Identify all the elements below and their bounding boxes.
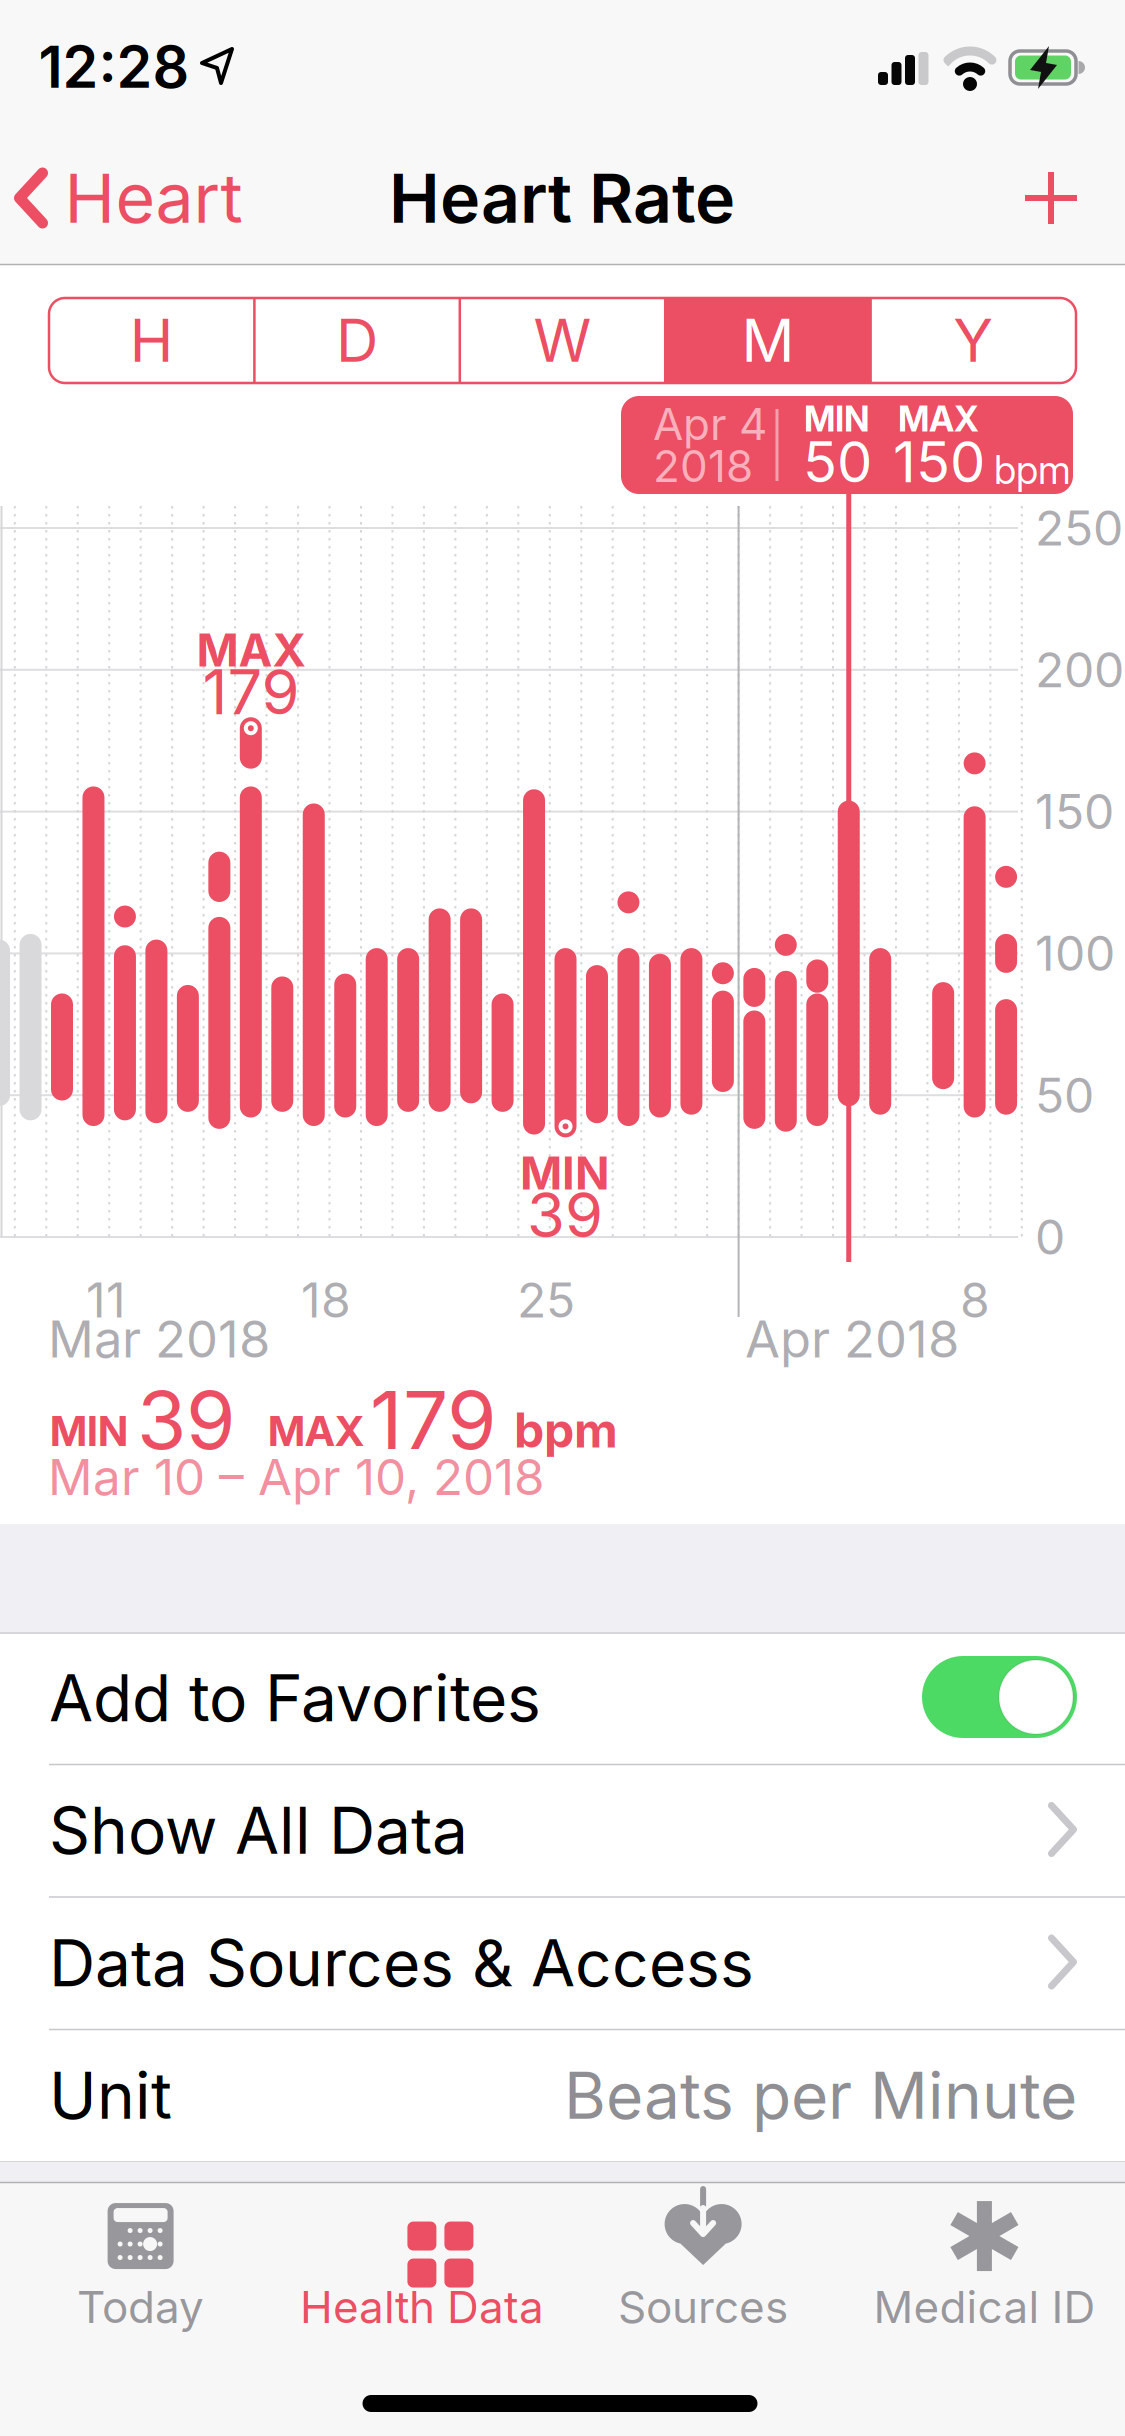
staticText: MIN [520,1146,610,1200]
button[interactable]: Today [1,2203,281,2333]
staticText: MAX [898,399,979,439]
staticText: 200 [1035,641,1124,698]
button[interactable]: H [49,298,254,383]
staticText: Mar 2018 [48,1309,270,1369]
staticText: 39 [137,1373,236,1467]
staticText: 25 [517,1272,575,1328]
staticText: 39 [527,1179,603,1251]
staticText: 50 [803,429,872,495]
staticText: H [130,306,174,375]
staticText: bpm [514,1402,618,1458]
staticText: 179 [202,656,299,728]
staticText: Sources [618,2281,788,2333]
staticText: Heart Rate [389,158,735,238]
staticText: 250 [1035,500,1123,556]
staticText: Beats per Minute [564,2058,1077,2133]
staticText: 150 [1035,783,1114,840]
staticText: MAX [268,1407,364,1455]
button[interactable]: W [460,298,665,383]
staticText: 100 [1035,925,1115,982]
button[interactable]: M [665,298,871,383]
staticText: 18 [301,1272,351,1328]
staticText: 0 [1035,1209,1065,1265]
staticText: Unit [49,2058,172,2133]
staticText: 12:28 [38,33,189,101]
staticText: Data Sources & Access [49,1925,754,2001]
staticText: Y [953,306,993,375]
staticText: W [533,306,591,375]
staticText: 50 [1035,1067,1094,1123]
staticText: 179 [370,1373,497,1467]
staticText: bpm [994,447,1071,493]
staticText: MIN [804,399,870,439]
staticText: MIN [50,1407,128,1455]
button[interactable]: Show All Data [0,1764,1125,1896]
staticText: MAX [196,623,305,677]
staticText: D [336,306,378,375]
staticText: Add to Favorites [49,1660,541,1736]
button[interactable]: Health Data [282,2203,562,2333]
button[interactable]: D [254,298,460,383]
button[interactable]: Data Sources & Access [0,1897,1125,2029]
staticText: 8 [960,1272,990,1328]
staticText: Health Data [300,2281,544,2333]
button[interactable]: Medical ID [844,2203,1124,2333]
staticText: Heart [64,158,242,238]
button[interactable]: Unit [0,2029,1125,2161]
staticText: Mar 10 – Apr 10, 2018 [48,1448,545,1506]
button[interactable]: Heart [13,163,242,233]
button[interactable]: Y [871,298,1076,383]
staticText: 2018 [653,440,753,492]
button[interactable]: Add to Favorites [922,1656,1077,1738]
button[interactable]: Add [1025,172,1077,224]
staticText: Show All Data [49,1793,468,1868]
staticText: M [741,306,794,375]
staticText: Today [77,2281,204,2333]
staticText: Medical ID [873,2281,1095,2333]
staticText: 11 [86,1272,126,1328]
button[interactable]: Sources [563,2203,843,2333]
staticText: 150 [893,429,985,495]
staticText: Apr 2018 [745,1309,959,1369]
staticText: Apr 4 [653,398,767,450]
